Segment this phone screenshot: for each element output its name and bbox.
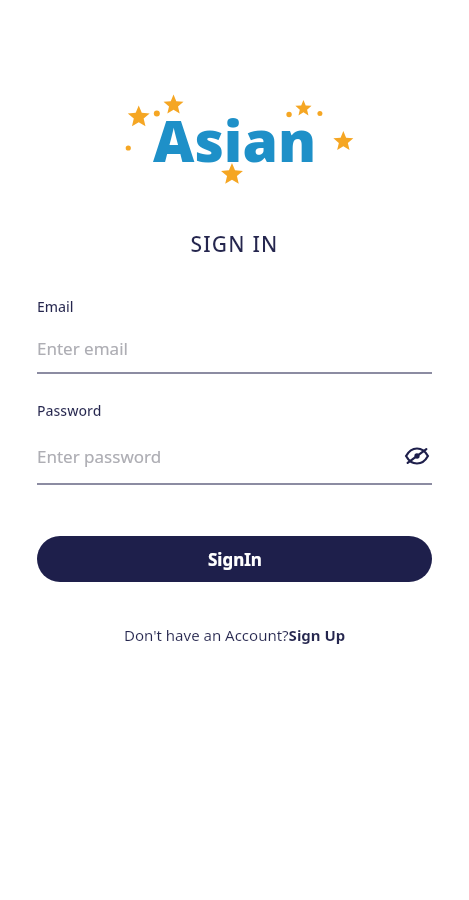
button[interactable]: Show password [402,441,432,471]
staticText: Enter password [37,445,402,468]
button[interactable]: SignIn [37,536,432,582]
staticText: Password [37,401,102,420]
staticText: Don't have an Account?Sign Up [124,625,346,645]
staticText: SignIn [208,548,262,571]
staticText: Email [37,297,74,316]
staticText: SIGN IN [0,230,469,259]
staticText: Enter email [37,337,432,360]
staticText: Asian [153,101,317,179]
button[interactable]: Don't have an Account?Sign Up [124,625,346,645]
